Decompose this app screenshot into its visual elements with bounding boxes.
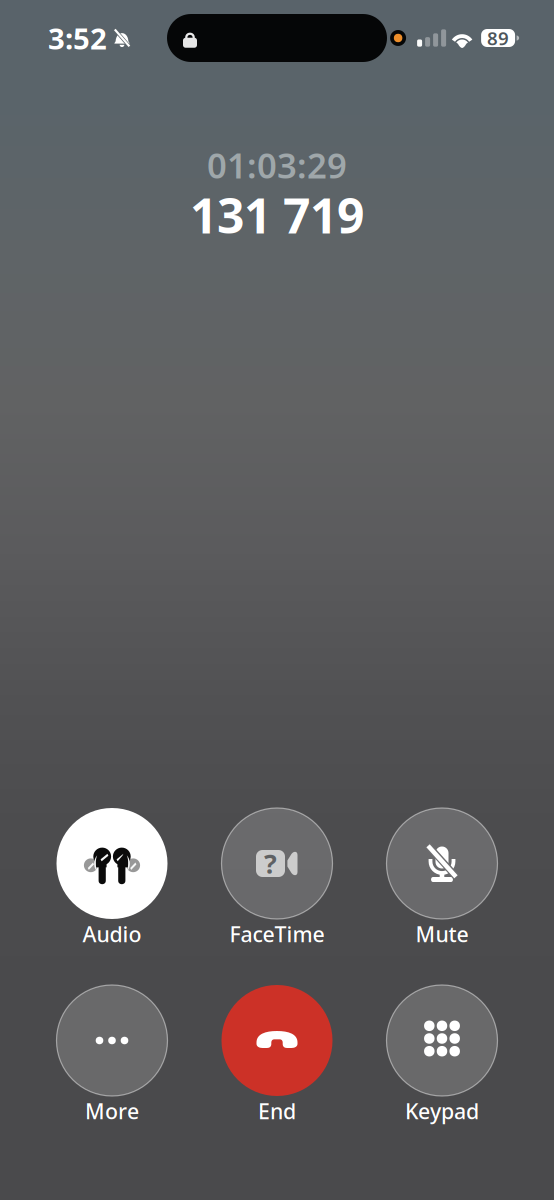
staticText: FaceTime	[229, 920, 324, 948]
button[interactable]: End	[194, 985, 359, 1126]
button[interactable]: ?	[194, 808, 359, 949]
staticText: 01:03:29	[207, 142, 347, 188]
staticText: 3:52	[48, 18, 107, 57]
staticText: End	[258, 1097, 296, 1125]
staticText: Mute	[415, 920, 468, 948]
button[interactable]: Keypad	[359, 985, 524, 1126]
button[interactable]: Audio	[29, 808, 194, 949]
staticText: 131 719	[190, 183, 364, 247]
staticText: ?	[264, 846, 277, 881]
staticText: More	[85, 1097, 139, 1125]
button[interactable]: More	[29, 985, 194, 1126]
staticText: 89	[487, 26, 509, 50]
button[interactable]: Mute	[359, 808, 524, 949]
staticText: Keypad	[405, 1097, 479, 1125]
staticText: Audio	[82, 920, 141, 948]
